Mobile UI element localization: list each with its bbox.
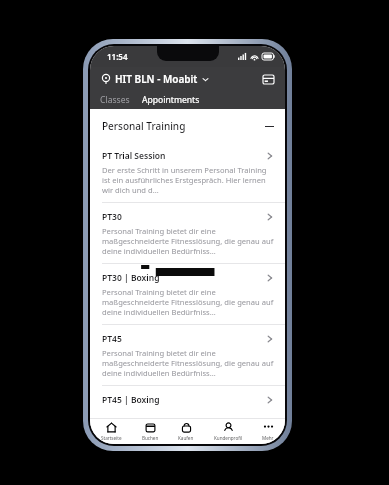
staticText: Buchen bbox=[142, 435, 159, 441]
staticText: Personal Training bietet dir eine maßges… bbox=[102, 287, 275, 317]
button[interactable]: PT Trial Session bbox=[90, 142, 285, 203]
staticText: Appointments bbox=[142, 94, 200, 106]
button[interactable]: HIT BLN - Moabit bbox=[101, 72, 209, 86]
staticText: Personal Training bietet dir eine maßges… bbox=[102, 348, 275, 378]
button[interactable]: Classes bbox=[90, 94, 136, 106]
staticText: Personal Training bietet dir eine maßges… bbox=[102, 226, 275, 256]
button[interactable]: Appointments bbox=[136, 94, 206, 106]
staticText: Kundenprofil bbox=[214, 435, 243, 441]
button[interactable]: Buchen bbox=[138, 420, 163, 443]
staticText: PT45 | Boxing bbox=[102, 394, 160, 406]
staticText: PT30 | Boxing bbox=[102, 272, 160, 284]
button[interactable]: Wallet bbox=[263, 75, 274, 84]
button[interactable]: Personal Training bbox=[90, 109, 285, 142]
staticText: Classes bbox=[100, 94, 130, 106]
staticText: Startseite bbox=[101, 435, 122, 441]
staticText: Der erste Schritt in unserem Personal Tr… bbox=[102, 165, 275, 195]
staticText: PT30 bbox=[102, 211, 122, 223]
button[interactable]: Startseite bbox=[97, 420, 126, 443]
staticText: Kaufen bbox=[178, 435, 194, 441]
staticText: PT45 bbox=[102, 333, 122, 345]
staticText: 11:54 bbox=[107, 51, 128, 62]
button[interactable]: PT45 bbox=[90, 325, 285, 386]
button[interactable]: Kundenprofil bbox=[210, 420, 247, 443]
staticText: HIT BLN - Moabit bbox=[115, 72, 198, 86]
button[interactable]: PT45 | Boxing bbox=[90, 386, 285, 418]
staticText: Mehr bbox=[262, 435, 274, 441]
button[interactable]: PT30 | Boxing bbox=[90, 264, 285, 325]
staticText: PT Trial Session bbox=[102, 150, 166, 162]
button[interactable]: Mehr bbox=[258, 420, 278, 443]
button[interactable]: Kaufen bbox=[174, 420, 198, 443]
staticText: Personal Training bbox=[102, 119, 265, 133]
button[interactable]: PT30 bbox=[90, 203, 285, 264]
